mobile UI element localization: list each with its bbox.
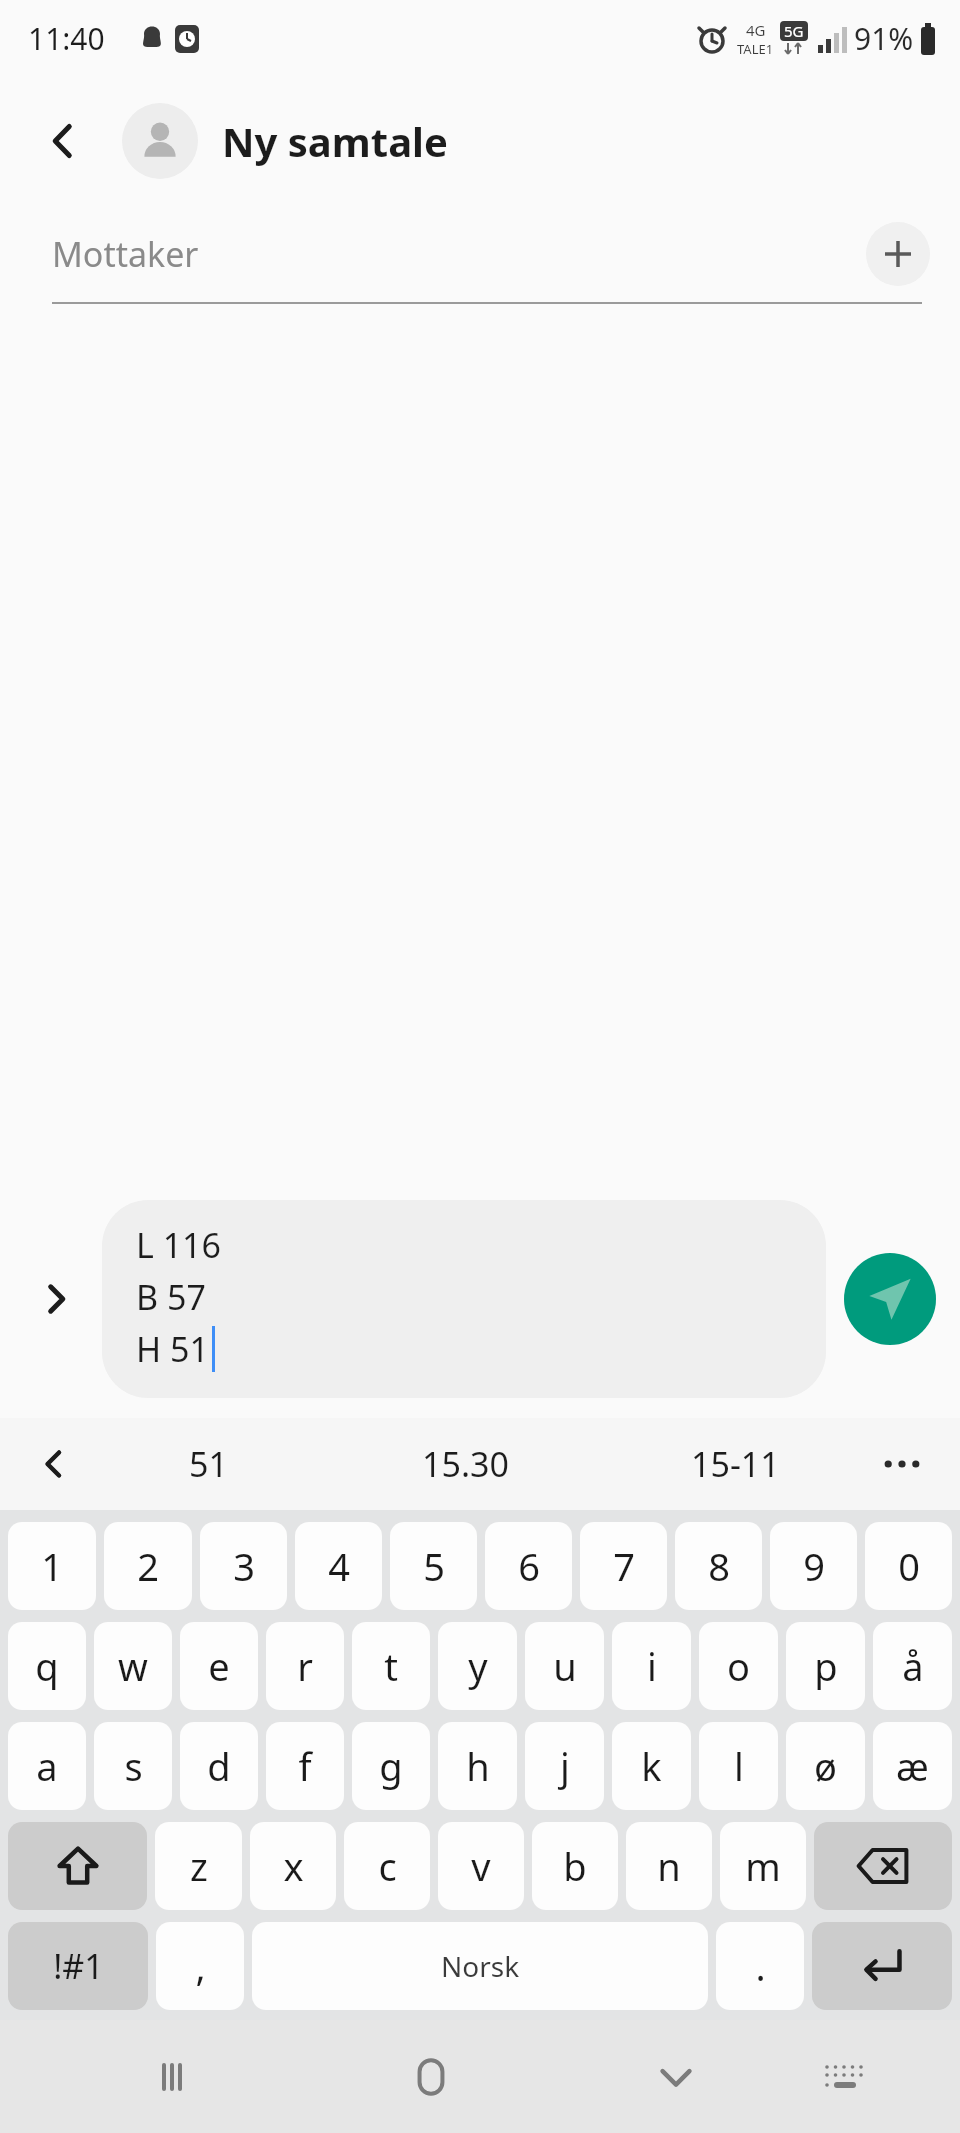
button[interactable]: c — [344, 1822, 430, 1910]
button[interactable]: Enter — [812, 1922, 952, 2010]
button[interactable]: o — [699, 1622, 778, 1710]
staticText: 91% — [854, 18, 914, 59]
button[interactable]: Contact avatar — [122, 103, 198, 179]
button[interactable]: 7 — [580, 1522, 667, 1610]
staticText: i — [647, 1640, 657, 1692]
button[interactable]: p — [786, 1622, 865, 1710]
staticText: w — [118, 1640, 148, 1692]
button[interactable]: f — [266, 1722, 344, 1810]
button[interactable]: 3 — [200, 1522, 287, 1610]
staticText: e — [208, 1640, 230, 1692]
staticText: 15.30 — [422, 1441, 509, 1487]
staticText: r — [297, 1640, 313, 1692]
button[interactable]: 51 — [86, 1418, 330, 1510]
staticText: 5 — [423, 1540, 445, 1592]
staticText: Ny samtale — [222, 114, 448, 168]
button[interactable]: d — [180, 1722, 258, 1810]
button[interactable]: 8 — [675, 1522, 762, 1610]
button[interactable]: Backspace — [814, 1822, 952, 1910]
button[interactable]: b — [532, 1822, 618, 1910]
staticText: v — [471, 1840, 491, 1892]
staticText: n — [657, 1840, 681, 1892]
button[interactable]: v — [438, 1822, 524, 1910]
button[interactable]: k — [612, 1722, 691, 1810]
button[interactable]: More options — [870, 1432, 934, 1496]
button[interactable]: Recents — [127, 2032, 217, 2122]
staticText: m — [745, 1840, 781, 1892]
button[interactable]: Norsk — [252, 1922, 708, 2010]
button[interactable]: 5 — [390, 1522, 477, 1610]
staticText: j — [560, 1740, 570, 1792]
button[interactable]: . — [716, 1922, 804, 2010]
staticText: 9 — [803, 1540, 825, 1592]
button[interactable]: r — [266, 1622, 344, 1710]
button[interactable]: !#1 — [8, 1922, 148, 2010]
button[interactable]: l — [699, 1722, 778, 1810]
staticText: o — [727, 1640, 750, 1692]
button[interactable]: 4 — [295, 1522, 382, 1610]
button[interactable]: w — [94, 1622, 172, 1710]
staticText: L 116 — [136, 1222, 221, 1268]
button[interactable]: z — [155, 1822, 242, 1910]
button[interactable]: Shift — [8, 1822, 147, 1910]
staticText: x — [283, 1840, 304, 1892]
button[interactable]: L 116 — [102, 1200, 826, 1398]
staticText: , — [195, 1940, 206, 1992]
staticText: s — [124, 1740, 143, 1792]
staticText: b — [563, 1840, 587, 1892]
button[interactable]: Send — [844, 1253, 936, 1345]
button[interactable]: 2 — [104, 1522, 192, 1610]
staticText: 51 — [189, 1441, 228, 1487]
button[interactable]: 9 — [770, 1522, 857, 1610]
staticText: p — [814, 1640, 838, 1692]
button[interactable]: i — [612, 1622, 691, 1710]
staticText: TALE1 — [737, 40, 774, 58]
button[interactable]: Expand options — [24, 1267, 88, 1331]
button[interactable]: å — [873, 1622, 952, 1710]
button[interactable]: Back — [28, 105, 100, 177]
button[interactable]: m — [720, 1822, 806, 1910]
button[interactable]: y — [438, 1622, 517, 1710]
staticText: q — [35, 1640, 59, 1692]
staticText: Mottaker — [52, 231, 199, 277]
button[interactable]: Mottaker — [52, 231, 866, 277]
staticText: å — [902, 1640, 924, 1692]
staticText: g — [379, 1740, 403, 1792]
staticText: 8 — [708, 1540, 730, 1592]
staticText: t — [384, 1640, 398, 1692]
button[interactable]: Previous suggestions — [22, 1432, 86, 1496]
button[interactable]: Add recipient — [866, 222, 930, 286]
staticText: 0 — [898, 1540, 920, 1592]
button[interactable]: a — [8, 1722, 86, 1810]
button[interactable]: 15-11 — [600, 1418, 870, 1510]
button[interactable]: Home — [386, 2032, 476, 2122]
button[interactable]: æ — [873, 1722, 952, 1810]
button[interactable]: u — [525, 1622, 604, 1710]
button[interactable]: h — [438, 1722, 517, 1810]
button[interactable]: Hide keyboard — [631, 2032, 721, 2122]
button[interactable]: q — [8, 1622, 86, 1710]
button[interactable]: t — [352, 1622, 430, 1710]
button[interactable]: g — [352, 1722, 430, 1810]
staticText: 6 — [518, 1540, 540, 1592]
button[interactable]: , — [156, 1922, 244, 2010]
staticText: z — [190, 1840, 208, 1892]
button[interactable]: x — [250, 1822, 336, 1910]
button[interactable]: e — [180, 1622, 258, 1710]
button[interactable]: s — [94, 1722, 172, 1810]
staticText: 11:40 — [28, 18, 105, 59]
button[interactable]: j — [525, 1722, 604, 1810]
staticText: y — [468, 1640, 488, 1692]
staticText: 5G — [784, 21, 804, 41]
button[interactable]: 6 — [485, 1522, 572, 1610]
button[interactable]: Change keyboard — [799, 2032, 889, 2122]
staticText: f — [298, 1740, 312, 1792]
button[interactable]: 1 — [8, 1522, 96, 1610]
staticText: ø — [814, 1740, 837, 1792]
button[interactable]: n — [626, 1822, 712, 1910]
button[interactable]: 15.30 — [330, 1418, 600, 1510]
button[interactable]: 0 — [865, 1522, 952, 1610]
staticText: !#1 — [53, 1943, 104, 1989]
staticText: . — [755, 1940, 766, 1992]
button[interactable]: ø — [786, 1722, 865, 1810]
